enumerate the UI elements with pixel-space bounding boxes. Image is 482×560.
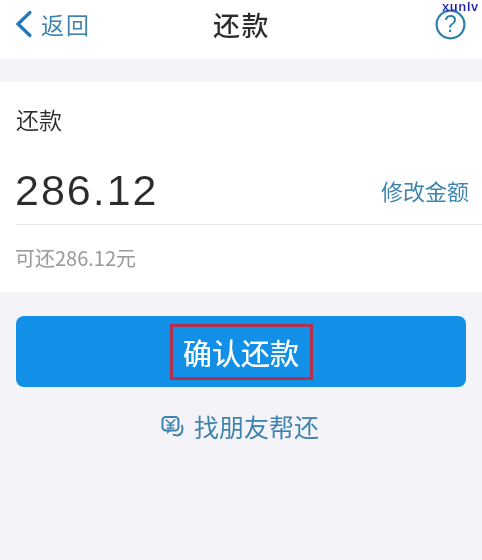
staticText: 找朋友帮还 [194, 408, 320, 444]
staticText: 返回 [40, 7, 90, 40]
staticText: 286.12 [15, 166, 159, 214]
staticText: 还款 [213, 5, 271, 44]
button[interactable]: 找朋友帮还 [160, 406, 322, 446]
staticText: ? [444, 11, 457, 37]
staticText: 修改金额 [381, 174, 470, 206]
staticText: xunlv [442, 0, 479, 14]
button[interactable]: 修改金额 [377, 172, 474, 208]
button[interactable]: 确认还款 [16, 316, 466, 387]
staticText: 还款 [16, 102, 62, 135]
staticText: 确认还款 [183, 331, 300, 373]
button[interactable]: 返回 [8, 1, 100, 46]
staticText: 可还286.12元 [15, 243, 137, 272]
button[interactable]: Help [435, 9, 466, 40]
